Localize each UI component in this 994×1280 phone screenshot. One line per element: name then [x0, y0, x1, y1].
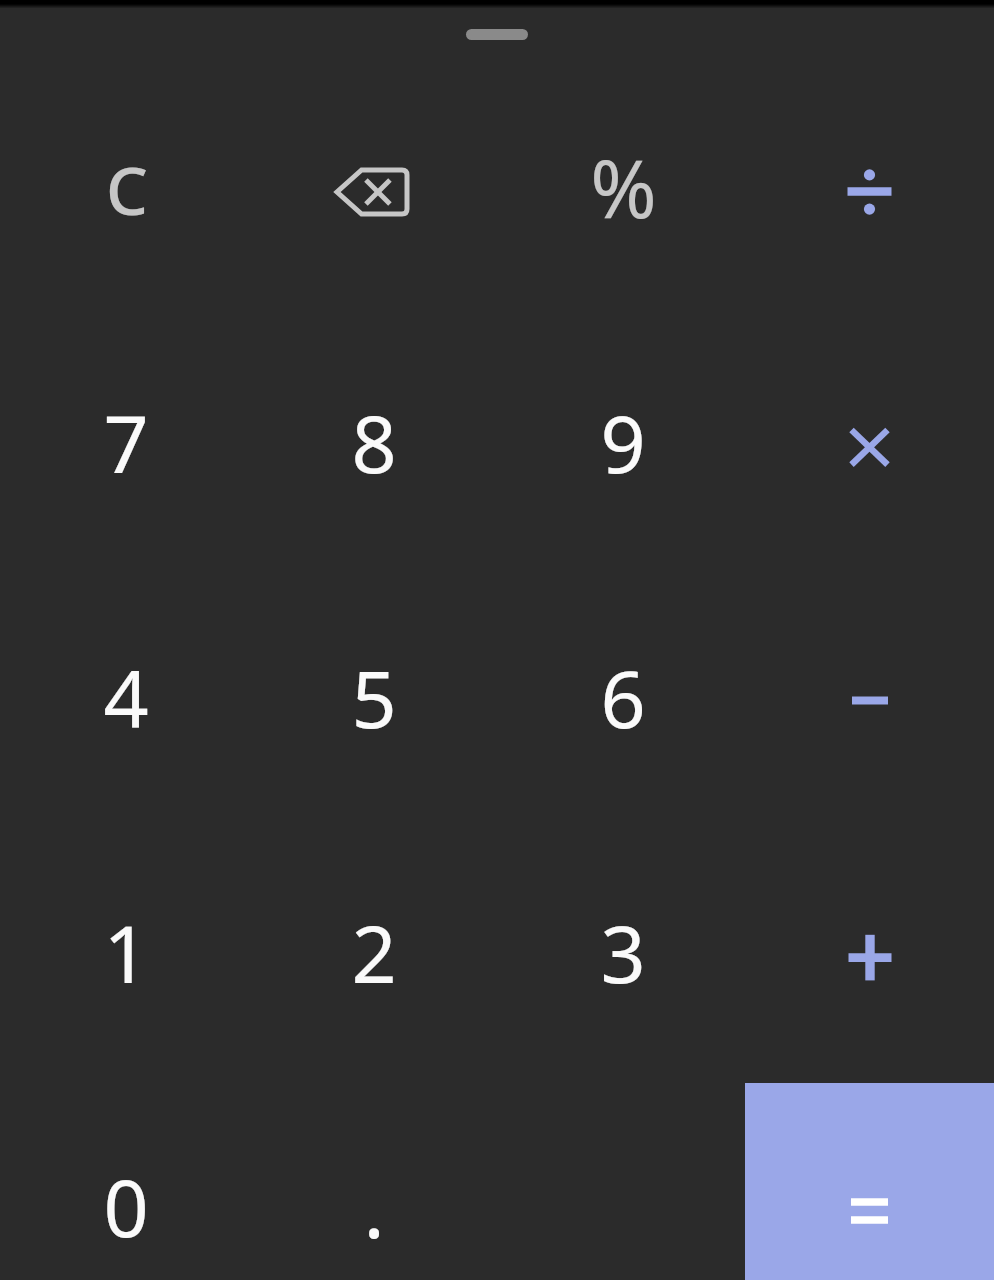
button[interactable]: 5 [248, 571, 496, 825]
button[interactable]: 2 [248, 826, 496, 1080]
staticText: 8 [351, 389, 397, 497]
button[interactable]: Subtract [745, 571, 993, 825]
button[interactable]: 1 [0, 826, 248, 1080]
button[interactable]: Multiply [745, 316, 993, 570]
staticText: . [363, 1154, 385, 1262]
staticText: 0 [103, 1153, 149, 1261]
staticText: 1 [103, 899, 149, 1007]
button[interactable]: . [248, 1081, 496, 1280]
button[interactable]: 3 [497, 826, 745, 1080]
staticText: 2 [351, 899, 397, 1007]
button[interactable]: 8 [248, 316, 496, 570]
button[interactable]: 7 [0, 316, 248, 570]
button[interactable]: Divide [745, 62, 993, 316]
button[interactable]: % [497, 62, 745, 316]
button[interactable]: 0 [0, 1081, 248, 1280]
button[interactable]: Equals [745, 1083, 994, 1280]
button[interactable]: Backspace [248, 62, 496, 316]
staticText: 3 [600, 899, 646, 1007]
staticText: % [590, 132, 657, 241]
button[interactable]: 6 [497, 571, 745, 825]
staticText: 9 [600, 389, 646, 497]
button[interactable]: 9 [497, 316, 745, 570]
button[interactable]: C [0, 62, 248, 316]
button[interactable]: 4 [0, 571, 248, 825]
staticText: 6 [600, 644, 646, 752]
button[interactable]: Add [745, 826, 993, 1080]
staticText: 7 [103, 389, 149, 497]
staticText: 4 [103, 644, 149, 752]
staticText: 5 [351, 644, 397, 752]
staticText: C [106, 144, 148, 234]
